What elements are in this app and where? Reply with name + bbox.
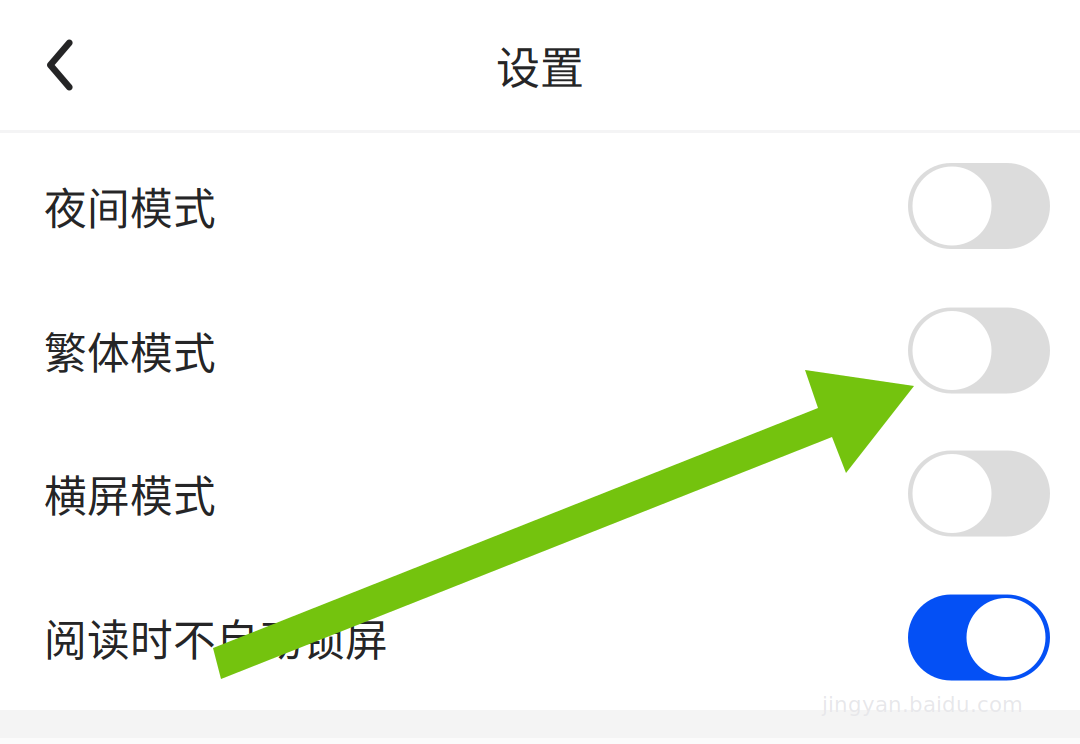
button[interactable]: 阅读时不自动锁屏 — [0, 565, 1080, 710]
button[interactable]: 夜间模式 — [0, 133, 1080, 279]
staticText: 夜间模式 — [44, 175, 216, 237]
staticText: 横屏模式 — [44, 463, 216, 524]
staticText: 繁体模式 — [44, 320, 216, 381]
staticText: 设置 — [496, 33, 584, 97]
staticText: 阅读时不自动锁屏 — [44, 607, 388, 668]
staticText: jingyan.baidu.com — [822, 692, 1023, 717]
button[interactable]: 繁体模式 — [0, 279, 1080, 422]
button[interactable]: 横屏模式 — [0, 422, 1080, 565]
button[interactable]: Back — [0, 0, 118, 130]
